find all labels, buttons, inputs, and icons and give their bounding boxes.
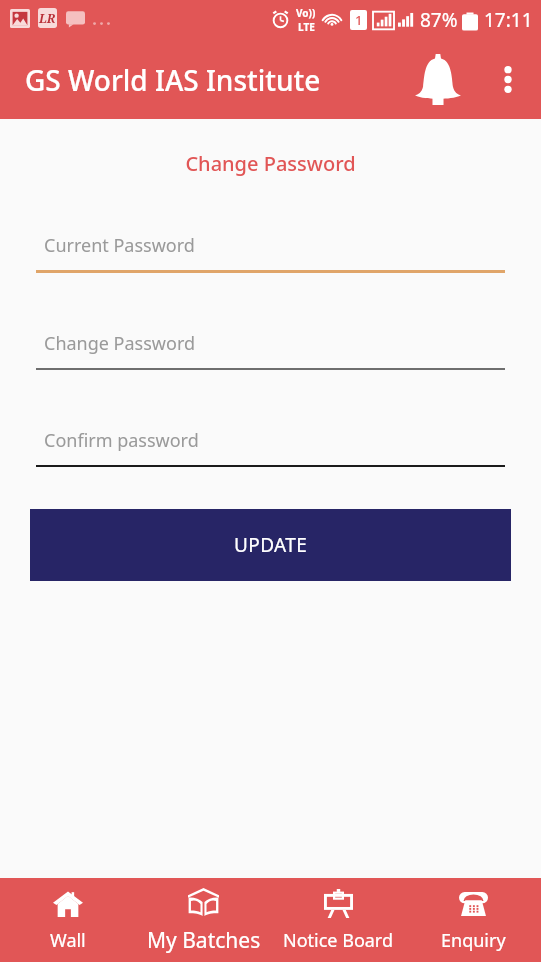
staticText: Notice Board <box>283 928 394 953</box>
staticText: Current Password <box>44 233 195 258</box>
button[interactable]: Notifications <box>410 51 466 107</box>
button[interactable]: Enquiry <box>406 878 541 962</box>
staticText: Change Password <box>0 150 541 177</box>
button[interactable]: Notice Board <box>271 878 406 962</box>
staticText: Confirm password <box>44 428 199 453</box>
button[interactable]: More options <box>484 55 532 103</box>
button[interactable]: UPDATE <box>30 509 511 581</box>
staticText: LR <box>39 10 56 26</box>
staticText: Vo)) <box>296 6 316 20</box>
staticText: Change Password <box>44 331 196 356</box>
staticText: My Batches <box>147 926 261 955</box>
staticText: 17:11 <box>484 7 533 33</box>
staticText: Wall <box>50 928 86 953</box>
button[interactable]: Wall <box>0 878 136 962</box>
staticText: LTE <box>298 20 315 34</box>
staticText: UPDATE <box>234 532 308 558</box>
staticText: 1 <box>355 11 363 29</box>
staticText: GS World IAS Institute <box>25 61 321 99</box>
button[interactable]: My Batches <box>136 878 271 962</box>
staticText: Enquiry <box>441 928 506 953</box>
staticText: 87% <box>420 7 458 33</box>
